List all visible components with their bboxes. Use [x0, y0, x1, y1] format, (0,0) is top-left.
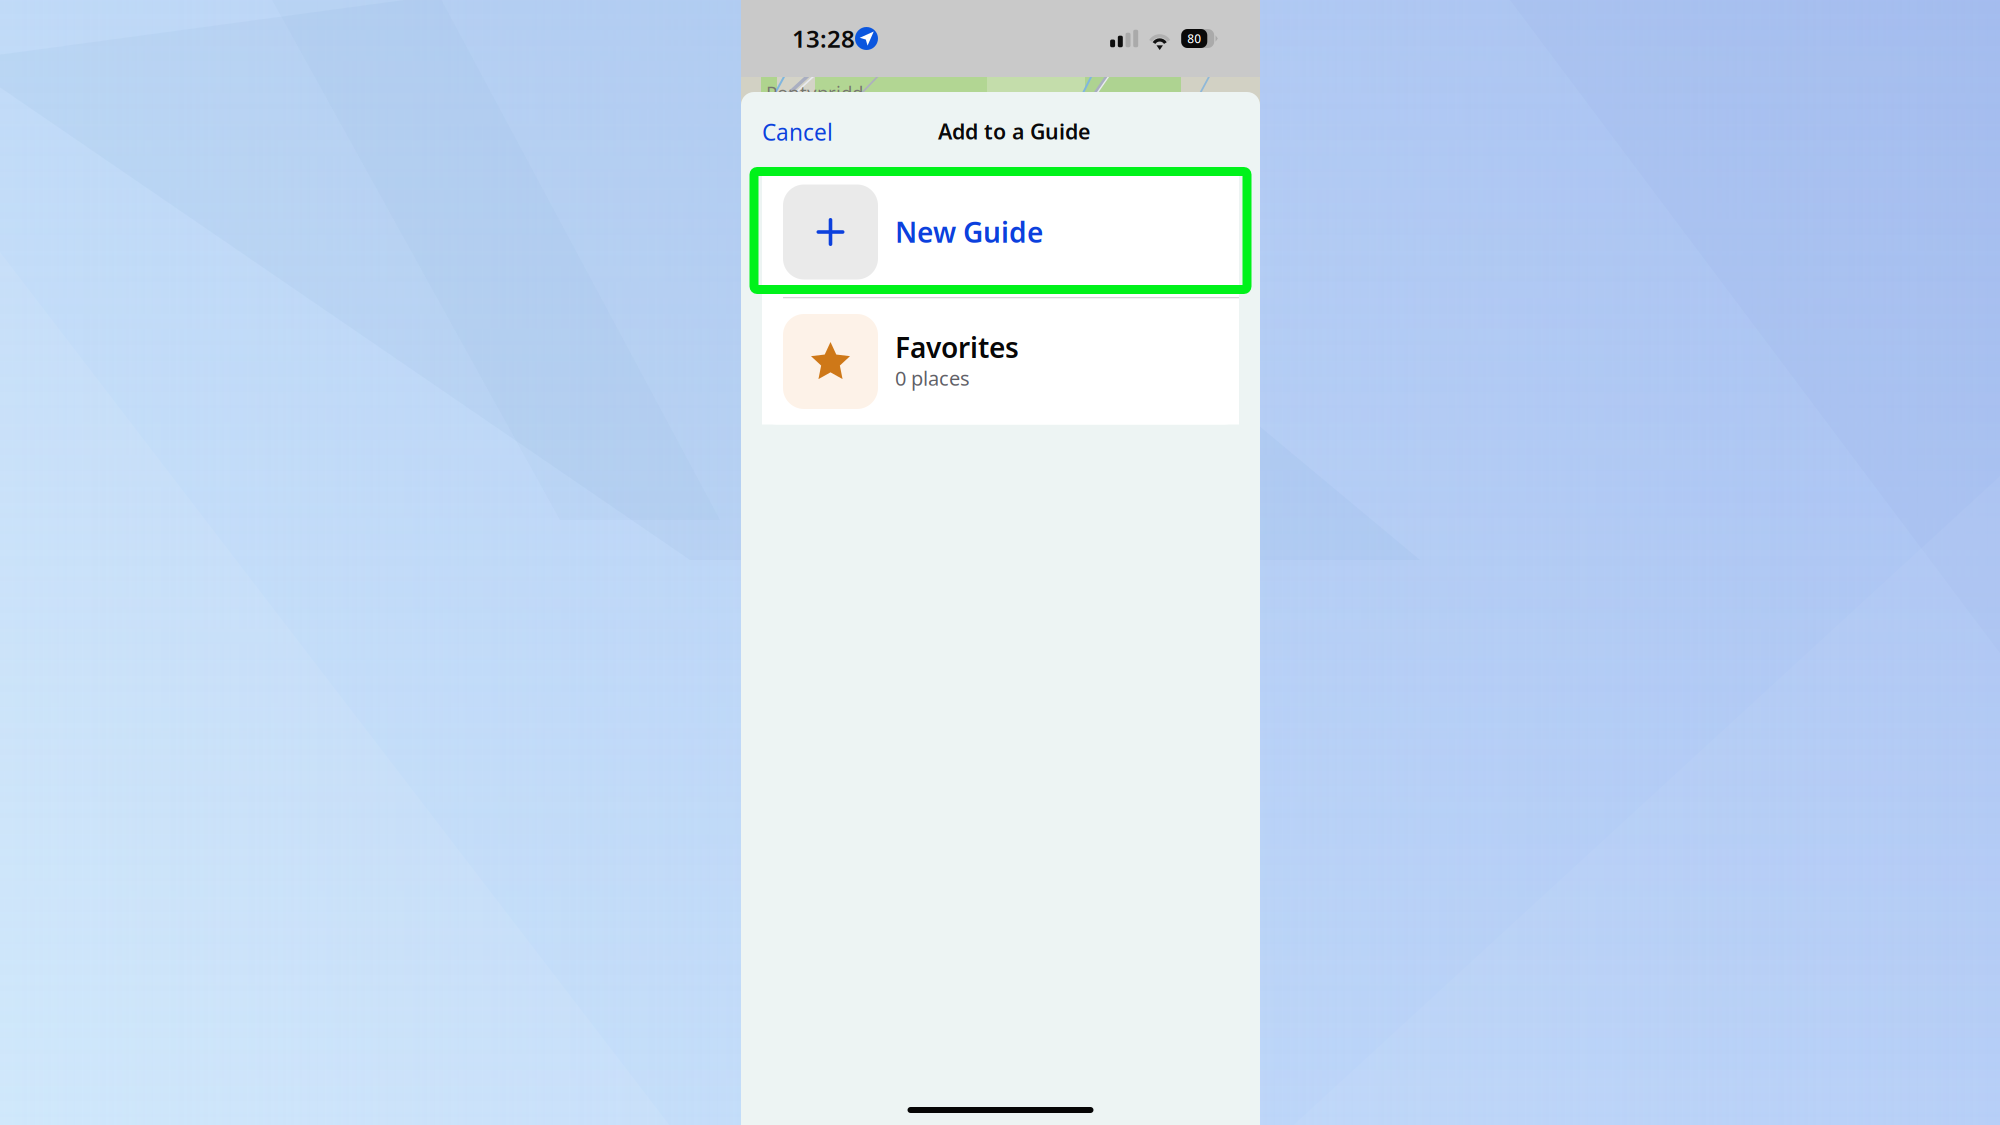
- staticText: 0 places: [895, 365, 970, 391]
- button[interactable]: Favorites: [762, 298, 1239, 424]
- staticText: 13:28: [792, 23, 855, 54]
- staticText: Pontypridd: [766, 80, 863, 105]
- staticText: 80: [1187, 30, 1201, 46]
- staticText: Add to a Guide: [938, 117, 1090, 145]
- button[interactable]: Cancel: [749, 107, 846, 157]
- staticText: Cancel: [762, 117, 833, 147]
- button[interactable]: New Guide: [762, 167, 1239, 297]
- staticText: Favorites: [895, 329, 1019, 366]
- staticText: New Guide: [895, 213, 1043, 251]
